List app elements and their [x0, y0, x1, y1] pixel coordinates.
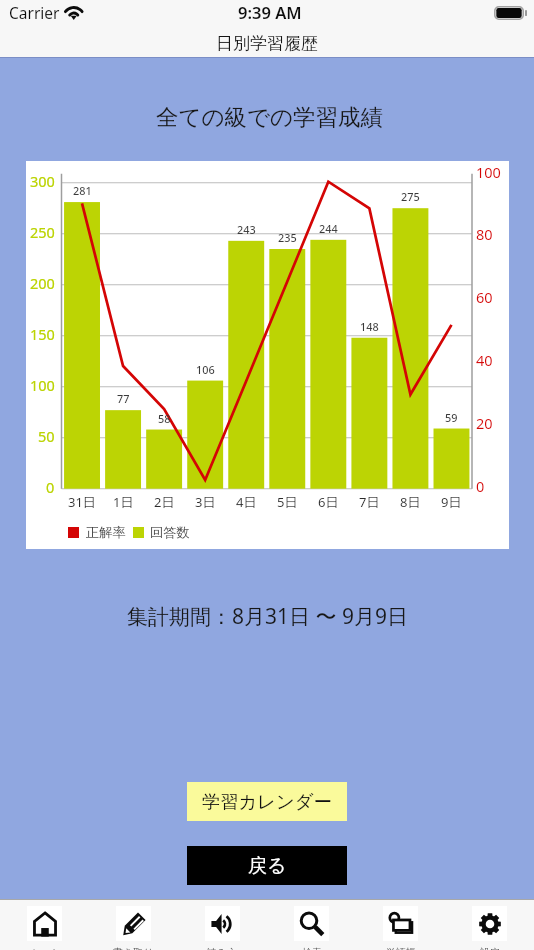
button[interactable]: 学習カレンダー [187, 782, 347, 821]
staticText: 250 [30, 222, 55, 242]
staticText: 244 [319, 221, 338, 236]
staticText: 設定 [480, 946, 500, 950]
button[interactable]: 設定 [445, 900, 534, 950]
staticText: 80 [476, 224, 493, 244]
staticText: 正解率 [86, 524, 126, 541]
staticText: 0 [476, 476, 485, 496]
staticText: 7日 [359, 493, 380, 511]
staticText: 300 [30, 171, 55, 191]
staticText: ホーム [29, 946, 60, 950]
staticText: 60 [476, 287, 493, 307]
staticText: 58 [158, 411, 171, 426]
staticText: 書き取り [113, 946, 154, 950]
staticText: 59 [445, 410, 458, 425]
staticText: 243 [237, 222, 256, 237]
staticText: 回答数 [150, 524, 190, 541]
button[interactable]: 単語帳 [356, 900, 445, 950]
staticText: 40 [476, 350, 493, 370]
staticText: 148 [360, 319, 379, 334]
button[interactable]: 読み方 [178, 900, 267, 950]
staticText: 3日 [195, 493, 216, 511]
staticText: 読み方 [207, 946, 238, 950]
staticText: 100 [30, 375, 55, 395]
staticText: 150 [30, 324, 55, 344]
staticText: 検索 [302, 946, 322, 950]
staticText: 200 [30, 273, 55, 293]
staticText: 20 [476, 413, 493, 433]
staticText: 106 [196, 362, 215, 377]
staticText: 8日 [400, 493, 421, 511]
staticText: 戻る [248, 854, 287, 878]
staticText: 日別学習履歴 [216, 33, 318, 54]
staticText: 100 [476, 162, 501, 182]
staticText: 275 [401, 189, 420, 204]
staticText: 1日 [113, 493, 134, 511]
staticText: Carrier [9, 2, 60, 23]
button[interactable]: 戻る [187, 846, 347, 885]
staticText: 学習カレンダー [202, 790, 332, 813]
staticText: 単語帳 [386, 946, 416, 950]
staticText: 235 [278, 230, 297, 245]
staticText: 50 [38, 426, 55, 446]
staticText: 9日 [441, 493, 462, 511]
staticText: 0 [46, 477, 55, 497]
button[interactable]: 検索 [267, 900, 356, 950]
staticText: 2日 [154, 493, 175, 511]
staticText: 77 [117, 391, 130, 406]
staticText: 5日 [277, 493, 298, 511]
staticText: 全ての級での学習成績 [156, 103, 384, 131]
staticText: 9:39 AM [238, 1, 302, 23]
staticText: 6日 [318, 493, 339, 511]
staticText: 4日 [236, 493, 257, 511]
staticText: 集計期間：8月31日 〜 9月9日 [127, 602, 408, 631]
staticText: 281 [73, 183, 92, 198]
button[interactable]: ホーム [0, 900, 89, 950]
button[interactable]: 書き取り [89, 900, 178, 950]
staticText: 31日 [68, 493, 96, 511]
